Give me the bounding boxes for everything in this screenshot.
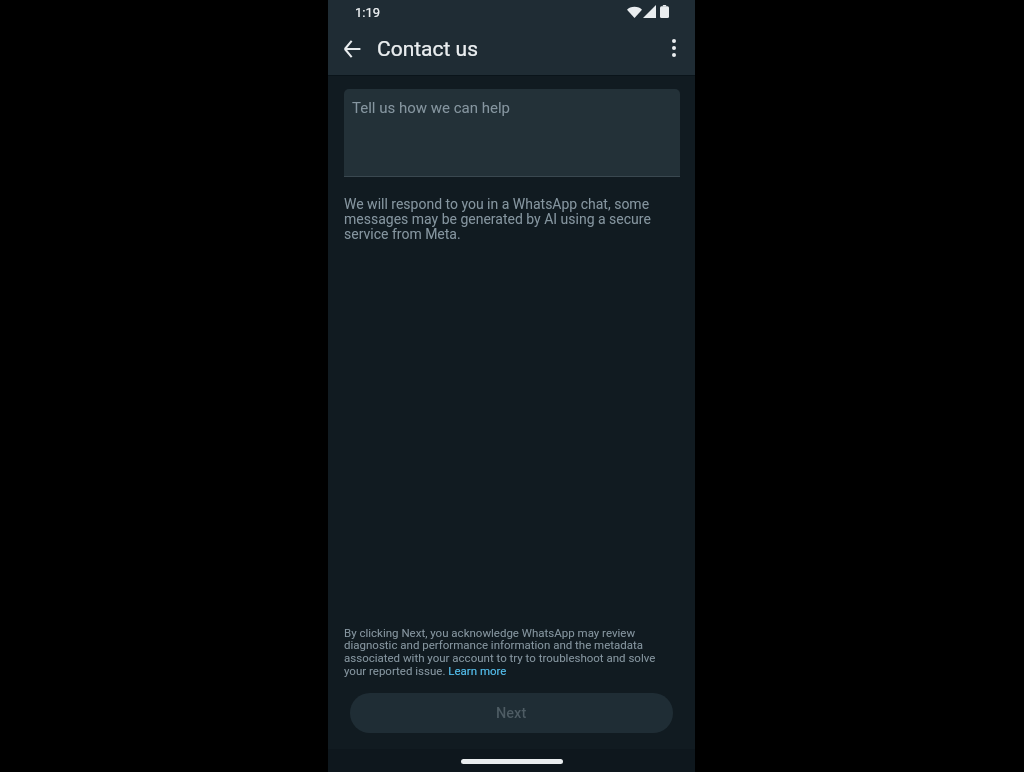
button[interactable]: Back [332,29,372,69]
button[interactable]: More options [654,28,694,68]
staticText: 1:19 [355,5,381,20]
staticText: Contact us [377,37,479,62]
staticText: We will respond to you in a WhatsApp cha… [344,196,680,242]
button[interactable]: Learn more [448,664,507,678]
staticText: Next [496,705,527,722]
button[interactable]: Next [350,693,673,733]
staticText: By clicking Next, you acknowledge WhatsA… [344,626,680,678]
staticText: Tell us how we can help [352,99,510,117]
button[interactable]: Tell us how we can help [344,89,680,177]
